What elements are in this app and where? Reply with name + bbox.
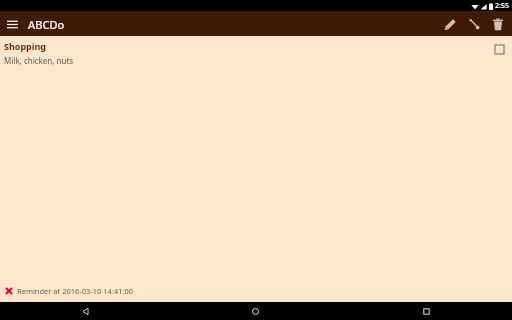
button[interactable]: Remove reminder <box>0 282 512 302</box>
button[interactable]: Back <box>0 302 170 320</box>
button[interactable]: Toggle done <box>490 40 508 58</box>
button[interactable]: Edit <box>438 12 462 36</box>
staticText: ABCDo <box>28 17 65 32</box>
staticText: Reminder at 2016-03-10 14:41:00 <box>17 286 134 296</box>
button[interactable]: Remove reminder <box>2 284 16 298</box>
button[interactable]: Home <box>170 302 341 320</box>
button[interactable]: Shopping <box>0 36 512 70</box>
button[interactable]: Delete <box>486 12 510 36</box>
staticText: Milk, chicken, nuts <box>4 55 74 66</box>
staticText: 2:55 <box>495 1 509 11</box>
button[interactable]: Attach <box>462 12 486 36</box>
button[interactable]: Recents <box>341 302 512 320</box>
staticText: Shopping <box>4 40 47 52</box>
button[interactable]: Open navigation drawer <box>0 12 24 36</box>
